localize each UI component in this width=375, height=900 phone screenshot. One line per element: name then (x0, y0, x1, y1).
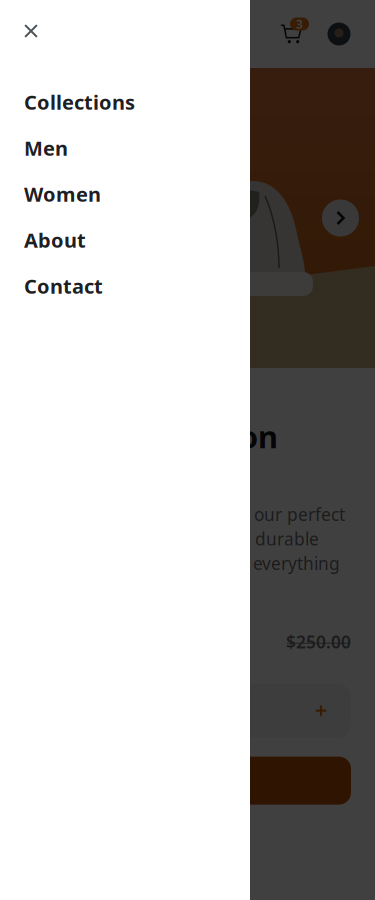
button[interactable]: Add to Cart (24, 757, 351, 805)
staticText: leather sneaker, featuring a durable (24, 527, 319, 550)
button[interactable]: Collections (0, 79, 250, 125)
staticText: Women (24, 181, 101, 207)
button[interactable]: Men (0, 125, 250, 171)
button[interactable]: Women (0, 171, 250, 217)
button[interactable]: Contact (0, 263, 250, 309)
button[interactable]: Next photo (318, 195, 363, 240)
button[interactable]: Cart, 3 items (273, 12, 317, 56)
staticText: Contact (24, 273, 103, 299)
staticText: sole for all-day comfort and everything (24, 552, 340, 575)
button[interactable]: Open menu (10, 12, 54, 56)
staticText: Urban Collection (24, 416, 278, 457)
staticText: Collections (24, 89, 135, 115)
staticText: $250.00 (286, 630, 351, 653)
button[interactable]: Increase quantity (299, 689, 343, 733)
staticText: Walk in style every day with our perfect (24, 503, 345, 526)
button[interactable]: About (0, 217, 250, 263)
staticText: 3 (296, 16, 303, 32)
button[interactable]: Close menu (0, 0, 50, 50)
staticText: About (24, 227, 86, 253)
button[interactable]: Account (317, 12, 361, 56)
staticText: Men (24, 135, 68, 161)
